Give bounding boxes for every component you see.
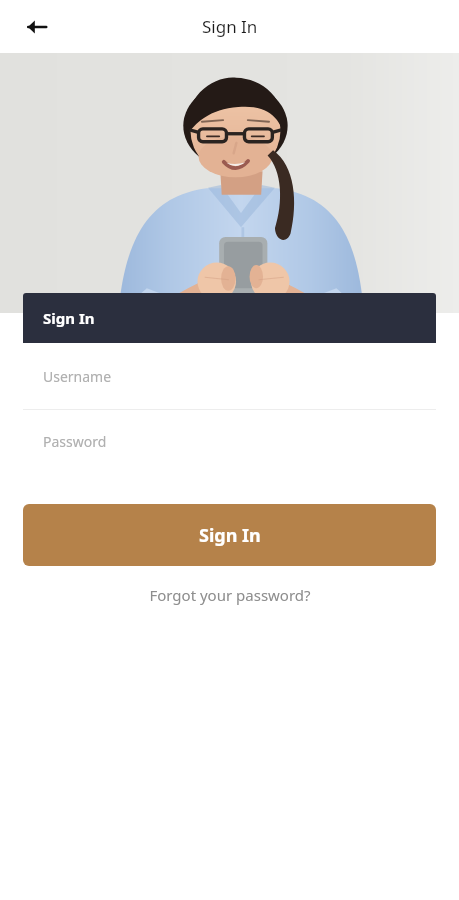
button[interactable]: Sign In bbox=[23, 504, 436, 566]
button[interactable]: Username bbox=[23, 343, 436, 409]
button[interactable]: Forgot your password? bbox=[137, 577, 323, 613]
button[interactable]: Back bbox=[15, 5, 59, 49]
staticText: Sign In bbox=[202, 15, 258, 38]
button[interactable]: Password bbox=[23, 410, 436, 473]
staticText: Username bbox=[43, 367, 112, 386]
staticText: Sign In bbox=[199, 523, 261, 548]
staticText: Forgot your password? bbox=[149, 585, 311, 605]
staticText: Sign In bbox=[43, 308, 95, 328]
staticText: Password bbox=[43, 432, 107, 451]
